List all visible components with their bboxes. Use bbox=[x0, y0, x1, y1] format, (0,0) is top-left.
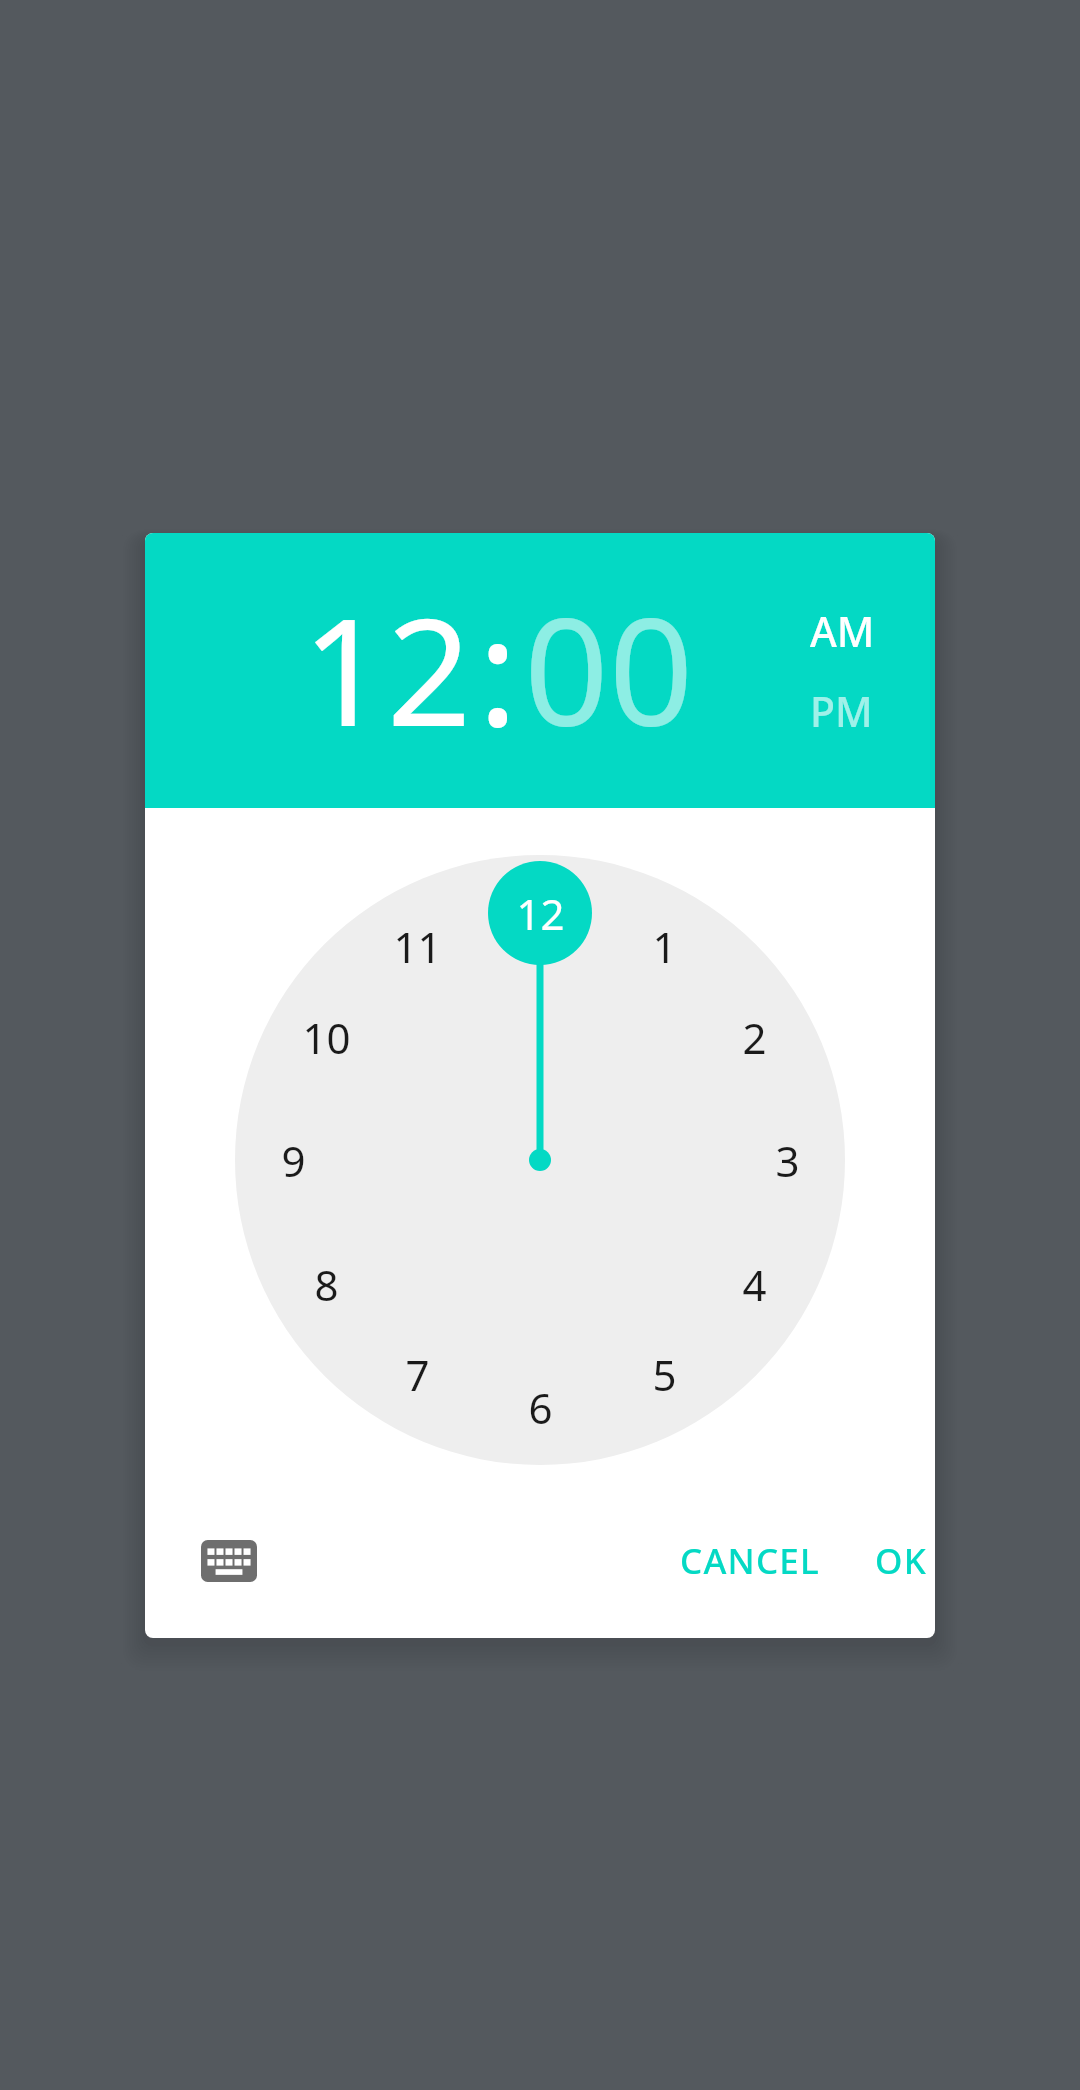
button[interactable]: 10 bbox=[270, 981, 382, 1093]
button[interactable]: 11 bbox=[361, 890, 473, 1002]
button[interactable]: OK bbox=[855, 1521, 935, 1601]
staticText: CANCEL bbox=[680, 1537, 820, 1585]
staticText: 10 bbox=[302, 1009, 351, 1066]
button[interactable]: 9 bbox=[237, 1104, 349, 1216]
staticText: : bbox=[478, 568, 518, 770]
button[interactable]: Switch to text input mode bbox=[187, 1519, 271, 1603]
staticText: AM bbox=[810, 603, 875, 659]
staticText: 11 bbox=[393, 918, 442, 975]
staticText: 9 bbox=[281, 1132, 306, 1189]
staticText: 5 bbox=[652, 1346, 677, 1403]
staticText: PM bbox=[810, 683, 873, 739]
staticText: 2 bbox=[742, 1009, 767, 1066]
staticText: 1 bbox=[652, 918, 677, 975]
button[interactable]: 12 bbox=[484, 857, 596, 969]
button[interactable]: 6 bbox=[484, 1351, 596, 1463]
button[interactable]: 3 bbox=[731, 1104, 843, 1216]
button[interactable]: 00 bbox=[522, 568, 696, 770]
staticText: 4 bbox=[742, 1256, 767, 1313]
button[interactable]: CANCEL bbox=[660, 1521, 840, 1601]
staticText: 7 bbox=[405, 1346, 430, 1403]
staticText: 3 bbox=[775, 1132, 800, 1189]
button[interactable]: 5 bbox=[608, 1318, 720, 1430]
staticText: OK bbox=[875, 1537, 927, 1585]
button[interactable]: PM bbox=[808, 679, 875, 743]
button[interactable]: 1 bbox=[608, 890, 720, 1002]
button[interactable]: AM bbox=[808, 599, 877, 663]
staticText: 12 bbox=[516, 885, 565, 942]
button[interactable]: 7 bbox=[361, 1318, 473, 1430]
button[interactable]: 4 bbox=[698, 1228, 810, 1340]
button[interactable]: 12 bbox=[300, 568, 474, 770]
button[interactable]: 2 bbox=[698, 981, 810, 1093]
staticText: 6 bbox=[528, 1379, 553, 1436]
staticText: 8 bbox=[314, 1256, 339, 1313]
button[interactable]: 8 bbox=[270, 1228, 382, 1340]
